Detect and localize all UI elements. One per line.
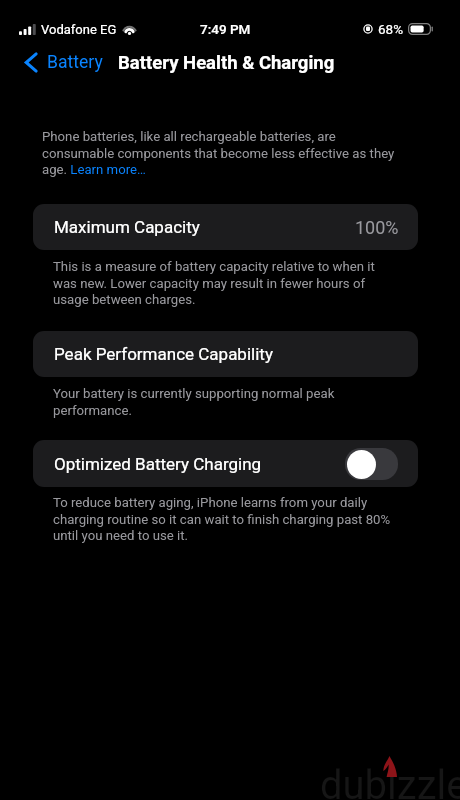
staticText: Phone batteries, like all rechargeable b… — [42, 129, 397, 177]
button[interactable]: Optimized Battery Charging toggle — [345, 448, 398, 480]
staticText: Peak Performance Capability — [54, 344, 273, 364]
staticText: Maximum Capacity — [54, 217, 200, 237]
staticText: To reduce battery aging, iPhone learns f… — [53, 495, 397, 543]
staticText: 68% — [378, 21, 404, 37]
staticText: Battery — [47, 52, 103, 73]
staticText: Your battery is currently supporting nor… — [53, 386, 397, 418]
button[interactable]: Peak Performance Capability — [33, 331, 418, 377]
staticText: Vodafone EG — [41, 22, 117, 37]
button[interactable]: Battery — [0, 46, 113, 79]
button[interactable]: Optimized Battery Charging — [33, 440, 418, 487]
staticText: Optimized Battery Charging — [54, 454, 262, 474]
staticText: This is a measure of battery capacity re… — [53, 259, 397, 307]
staticText: 7:49 PM — [200, 21, 251, 37]
staticText: Battery Health & Charging — [118, 52, 335, 74]
staticText: 100% — [355, 217, 399, 238]
staticText: dubizzle — [320, 762, 460, 800]
button[interactable]: Maximum Capacity — [33, 204, 418, 250]
